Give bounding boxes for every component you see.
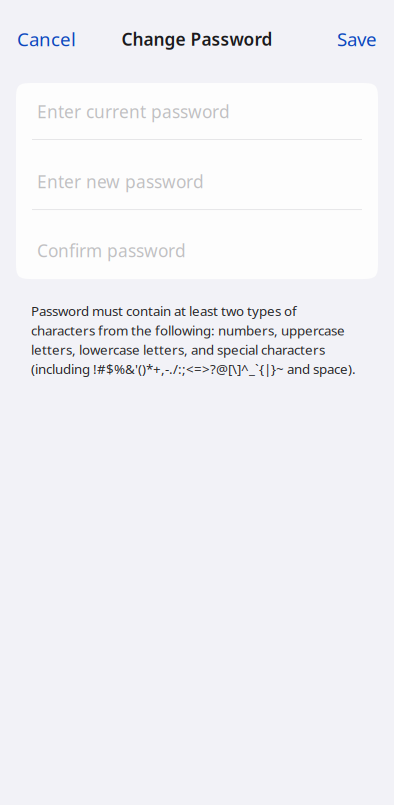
staticText: Confirm password bbox=[37, 239, 186, 262]
button[interactable]: Enter current password bbox=[16, 83, 378, 139]
staticText: Cancel bbox=[17, 27, 76, 51]
button[interactable]: Cancel bbox=[0, 17, 88, 61]
staticText: Enter current password bbox=[37, 100, 230, 123]
staticText: Save bbox=[337, 27, 377, 51]
staticText: Password must contain at least two types… bbox=[31, 302, 356, 378]
staticText: Change Password bbox=[121, 27, 272, 50]
button[interactable]: Enter new password bbox=[16, 140, 378, 209]
staticText: Enter new password bbox=[37, 170, 204, 193]
button[interactable]: Save bbox=[325, 17, 394, 61]
button[interactable]: Confirm password bbox=[16, 210, 378, 279]
